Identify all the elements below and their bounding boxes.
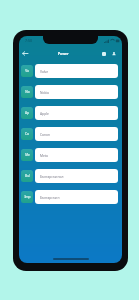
button[interactable]: Save — [99, 49, 109, 59]
button[interactable]: Bul — [21, 169, 118, 183]
staticText: Apple — [40, 111, 49, 115]
staticText: Ca — [25, 132, 29, 136]
button[interactable]: Account — [109, 49, 119, 59]
staticText: Bul — [25, 174, 30, 178]
staticText: Me — [25, 153, 30, 157]
button[interactable]: Ca — [21, 127, 118, 141]
button[interactable]: Back — [19, 48, 30, 59]
staticText: Va — [25, 69, 29, 73]
staticText: Български п — [40, 195, 60, 199]
staticText: Imp — [24, 195, 31, 199]
button[interactable]: No — [21, 85, 118, 99]
staticText: 7:50 — [25, 38, 33, 43]
staticText: Ap — [25, 111, 29, 115]
button[interactable]: Imp — [21, 190, 118, 204]
button[interactable]: Ap — [21, 106, 118, 120]
button[interactable]: Me — [21, 148, 118, 162]
staticText: Valve — [40, 69, 49, 73]
staticText: Canon — [40, 132, 51, 136]
staticText: Power — [58, 51, 69, 56]
staticText: No — [25, 90, 30, 94]
staticText: Meta — [40, 153, 48, 157]
staticText: Български пол — [40, 174, 64, 178]
staticText: Nokia — [40, 90, 49, 94]
button[interactable]: Va — [21, 64, 118, 78]
